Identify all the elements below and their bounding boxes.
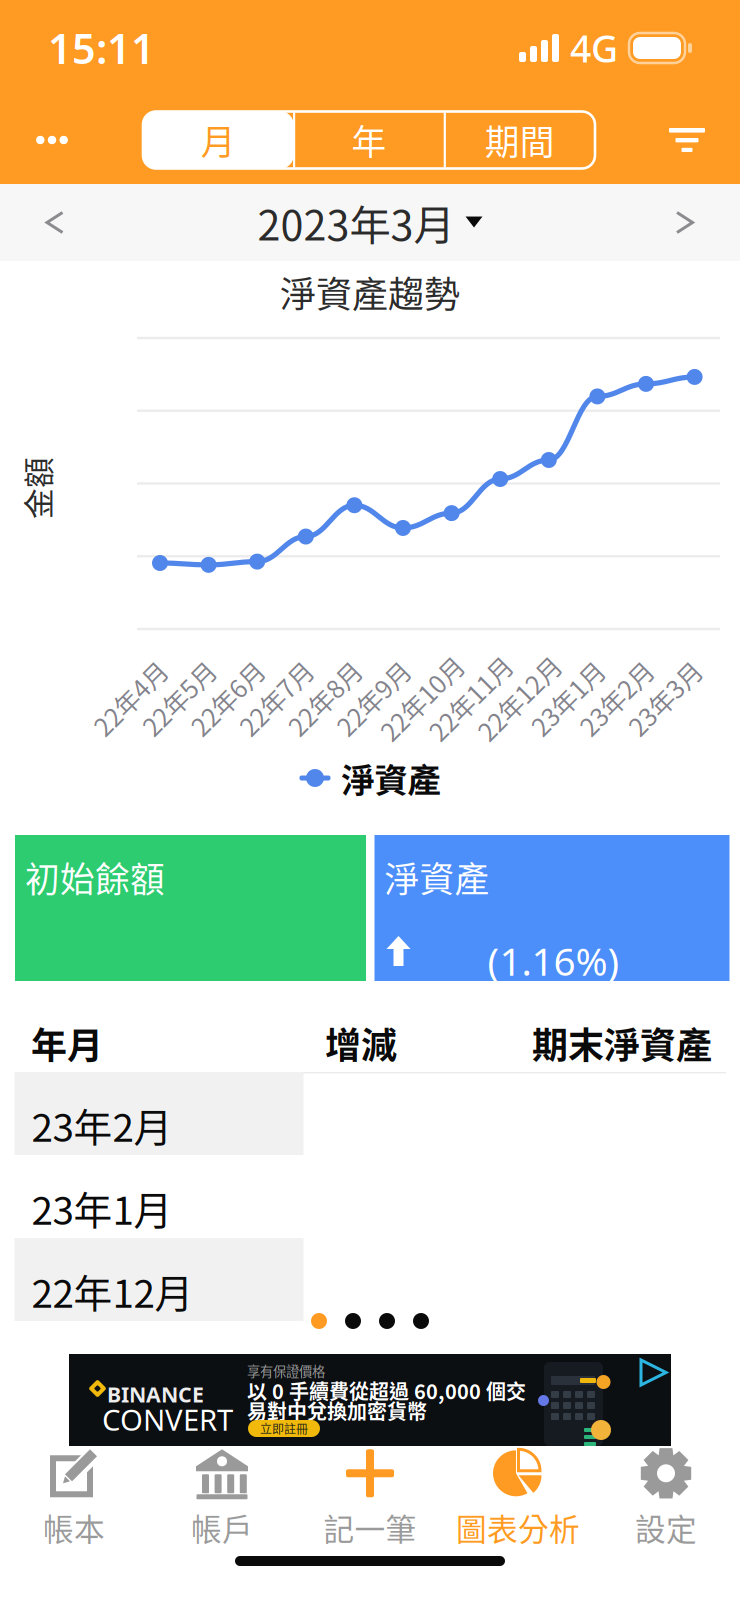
staticText: 22年5月 bbox=[133, 680, 225, 716]
staticText: 23年1月 bbox=[521, 680, 613, 716]
staticText: 15:11 bbox=[48, 21, 155, 75]
staticText: 帳本 bbox=[43, 1505, 105, 1550]
staticText: 圖表分析 bbox=[456, 1505, 580, 1550]
staticText: 22年12月 bbox=[466, 680, 572, 716]
button[interactable]: Advertisement bbox=[69, 1354, 671, 1446]
staticText: 淨資產 bbox=[384, 852, 489, 902]
staticText: 淨資產 bbox=[341, 754, 440, 802]
staticText: BINANCE bbox=[107, 1380, 204, 1408]
button[interactable]: 記一筆 bbox=[296, 1449, 444, 1547]
button[interactable]: 帳本 bbox=[0, 1449, 148, 1547]
staticText: 23年2月 bbox=[31, 1097, 172, 1153]
staticText: 帳戶 bbox=[191, 1505, 253, 1550]
staticText: 淨資產趨勢 bbox=[280, 266, 460, 318]
staticText: 月 bbox=[201, 115, 236, 165]
button[interactable]: 年 bbox=[294, 111, 444, 168]
staticText: 期末淨資產 bbox=[532, 1017, 712, 1069]
button[interactable]: 23年2月 bbox=[14, 1072, 303, 1155]
staticText: 22年4月 bbox=[84, 680, 176, 716]
staticText: 立即註冊 bbox=[260, 1420, 308, 1437]
staticText: 年月 bbox=[31, 1017, 103, 1069]
button[interactable]: More bbox=[0, 99, 104, 181]
staticText: 增減 bbox=[325, 1017, 397, 1069]
staticText: (1.16%) bbox=[487, 935, 619, 986]
staticText: 以 0 手續費從超過 60,000 個交 bbox=[247, 1376, 526, 1405]
staticText: 22年11月 bbox=[417, 680, 523, 716]
staticText: 易對中兌換加密貨幣 bbox=[247, 1396, 427, 1425]
staticText: 23年3月 bbox=[619, 680, 711, 716]
staticText: 22年9月 bbox=[327, 680, 419, 716]
staticText: 23年2月 bbox=[570, 680, 662, 716]
staticText: 金額 bbox=[6, 466, 68, 510]
staticText: 23年1月 bbox=[31, 1180, 172, 1236]
staticText: 初始餘額 bbox=[25, 852, 165, 902]
button[interactable]: 23年1月 bbox=[14, 1155, 303, 1238]
button[interactable]: Filter bbox=[634, 99, 740, 181]
staticText: 享有保證價格 bbox=[247, 1361, 325, 1380]
staticText: 設定 bbox=[635, 1505, 697, 1550]
button[interactable]: 月 bbox=[143, 111, 294, 168]
staticText: 22年12月 bbox=[31, 1263, 193, 1319]
button[interactable]: Previous month bbox=[0, 184, 110, 261]
staticText: CONVERT bbox=[102, 1400, 233, 1439]
staticText: 4G bbox=[570, 23, 618, 73]
button[interactable]: 圖表分析 bbox=[444, 1449, 592, 1547]
button[interactable]: Next month bbox=[630, 184, 740, 261]
staticText: 22年8月 bbox=[278, 680, 370, 716]
staticText: 期間 bbox=[485, 115, 555, 165]
button[interactable]: 期間 bbox=[444, 111, 595, 168]
staticText: 記一筆 bbox=[323, 1505, 416, 1550]
button[interactable]: 帳戶 bbox=[148, 1449, 296, 1547]
button[interactable]: 設定 bbox=[592, 1449, 740, 1547]
button[interactable]: 22年12月 bbox=[14, 1238, 303, 1321]
staticText: 22年7月 bbox=[230, 680, 322, 716]
button[interactable]: 2023年3月 bbox=[257, 184, 482, 261]
staticText: 年 bbox=[351, 115, 386, 165]
staticText: 22年10月 bbox=[369, 680, 475, 716]
staticText: 22年6月 bbox=[181, 680, 273, 716]
staticText: 2023年3月 bbox=[257, 193, 454, 252]
